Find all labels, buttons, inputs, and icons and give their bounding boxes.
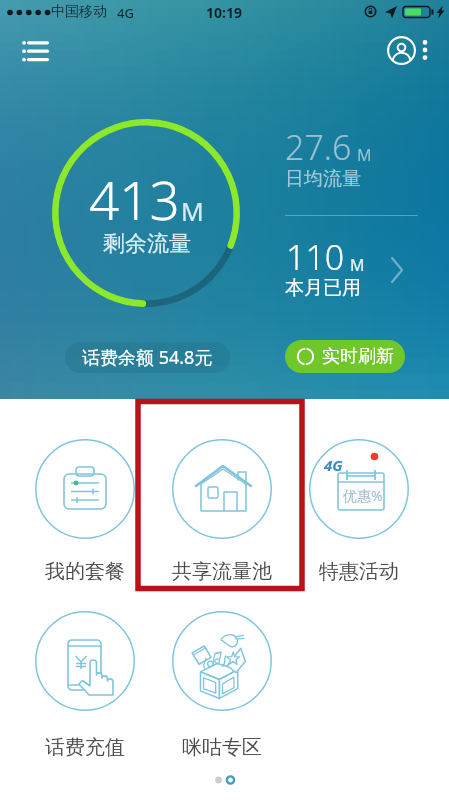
staticText: 优惠% — [343, 486, 383, 505]
button[interactable]: 我的套餐 — [17, 431, 153, 591]
staticText: 日均流量 — [285, 167, 361, 191]
staticText: 中国移动 — [51, 3, 107, 21]
staticText: 话费充值 — [45, 735, 125, 760]
button[interactable]: 413 — [52, 119, 240, 307]
button[interactable]: Account — [379, 28, 423, 72]
staticText: M — [350, 254, 365, 276]
staticText: 剩余流量 — [103, 230, 191, 258]
staticText: M — [181, 194, 204, 228]
staticText: 咪咕专区 — [182, 735, 262, 760]
staticText: 特惠活动 — [319, 559, 399, 584]
staticText: 话费余额 54.8元 — [82, 345, 213, 370]
button[interactable]: More options — [411, 30, 439, 70]
staticText: 413 — [89, 163, 180, 235]
staticText: 110 — [286, 234, 345, 280]
staticText: 我的套餐 — [45, 559, 125, 584]
button[interactable]: 话费余额 54.8元 — [65, 342, 230, 373]
button[interactable]: Menu — [13, 29, 57, 73]
staticText: 27.6 — [285, 124, 352, 170]
staticText: 4G — [324, 455, 343, 475]
staticText: M — [357, 144, 372, 166]
staticText: 实时刷新 — [322, 345, 394, 368]
button[interactable]: 实时刷新 — [285, 340, 405, 373]
staticText: 本月已用 — [285, 276, 361, 300]
staticText: 10:19 — [206, 3, 242, 22]
button[interactable]: 咪咕专区 — [154, 603, 290, 763]
button[interactable]: 话费充值 — [17, 603, 153, 763]
button[interactable]: 共享流量池 — [154, 431, 290, 591]
button[interactable]: 110 — [286, 234, 421, 280]
staticText: 4G — [117, 4, 134, 22]
button[interactable]: 4G — [291, 431, 427, 591]
staticText: 共享流量池 — [172, 559, 272, 584]
